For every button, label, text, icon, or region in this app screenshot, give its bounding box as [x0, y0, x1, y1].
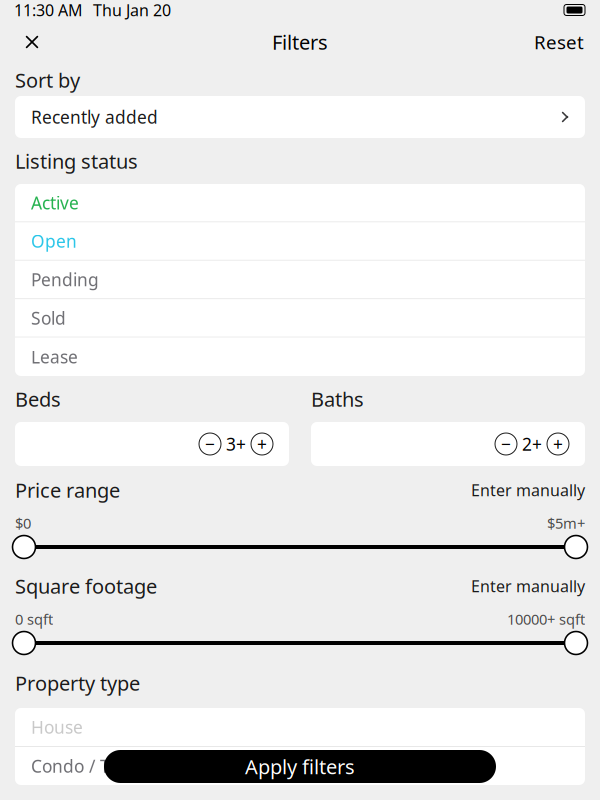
- staticText: Lease: [31, 345, 78, 368]
- button[interactable]: Enter manually: [471, 479, 585, 501]
- staticText: 11:30 AM: [14, 0, 83, 21]
- button[interactable]: Apply filters: [104, 750, 496, 783]
- staticText: 3+: [226, 432, 246, 455]
- staticText: Condo / Townhouse: [31, 754, 193, 777]
- staticText: Beds: [15, 386, 61, 412]
- staticText: Active: [31, 191, 79, 214]
- staticText: Property type: [15, 670, 140, 696]
- button[interactable]: House: [15, 708, 585, 746]
- button[interactable]: Open: [15, 222, 585, 261]
- button[interactable]: Minimum $0: [10, 533, 38, 561]
- button[interactable]: Maximum $5m+: [562, 533, 590, 561]
- button[interactable]: Enter manually: [471, 575, 585, 597]
- staticText: $0: [15, 513, 31, 533]
- button[interactable]: Condo / Townhouse: [15, 747, 585, 785]
- button[interactable]: Increase: [545, 431, 571, 457]
- button[interactable]: Sold: [15, 299, 585, 338]
- staticText: Sold: [31, 306, 66, 329]
- button[interactable]: Active: [15, 184, 585, 222]
- staticText: Open: [31, 230, 77, 253]
- button[interactable]: Reset: [530, 22, 588, 62]
- staticText: Listing status: [15, 148, 138, 174]
- staticText: Square footage: [15, 573, 157, 599]
- button[interactable]: Recently added: [15, 96, 585, 138]
- staticText: −: [205, 432, 215, 455]
- button[interactable]: Pending: [15, 261, 585, 299]
- staticText: Filters: [272, 29, 328, 55]
- staticText: Sort by: [15, 67, 80, 93]
- button[interactable]: Decrease: [197, 431, 223, 457]
- staticText: +: [553, 432, 563, 455]
- staticText: Enter manually: [471, 575, 585, 597]
- staticText: −: [501, 432, 511, 455]
- button[interactable]: Lease: [15, 338, 585, 376]
- button[interactable]: Maximum 10000+ sqft: [562, 629, 590, 657]
- staticText: 10000+ sqft: [507, 609, 585, 629]
- button[interactable]: Increase: [249, 431, 275, 457]
- staticText: +: [257, 432, 267, 455]
- staticText: Price range: [15, 477, 120, 503]
- staticText: 0 sqft: [15, 609, 53, 629]
- staticText: 2+: [522, 432, 542, 455]
- staticText: Recently added: [31, 105, 158, 128]
- staticText: Thu Jan 20: [93, 0, 171, 21]
- staticText: $5m+: [547, 513, 585, 533]
- button[interactable]: Decrease: [493, 431, 519, 457]
- staticText: Baths: [311, 386, 364, 412]
- staticText: Reset: [534, 30, 584, 54]
- staticText: Enter manually: [471, 479, 585, 501]
- staticText: Pending: [31, 268, 99, 291]
- staticText: House: [31, 715, 83, 738]
- button[interactable]: Minimum 0 sqft: [10, 629, 38, 657]
- button[interactable]: Close: [12, 22, 52, 62]
- staticText: Apply filters: [245, 753, 355, 780]
